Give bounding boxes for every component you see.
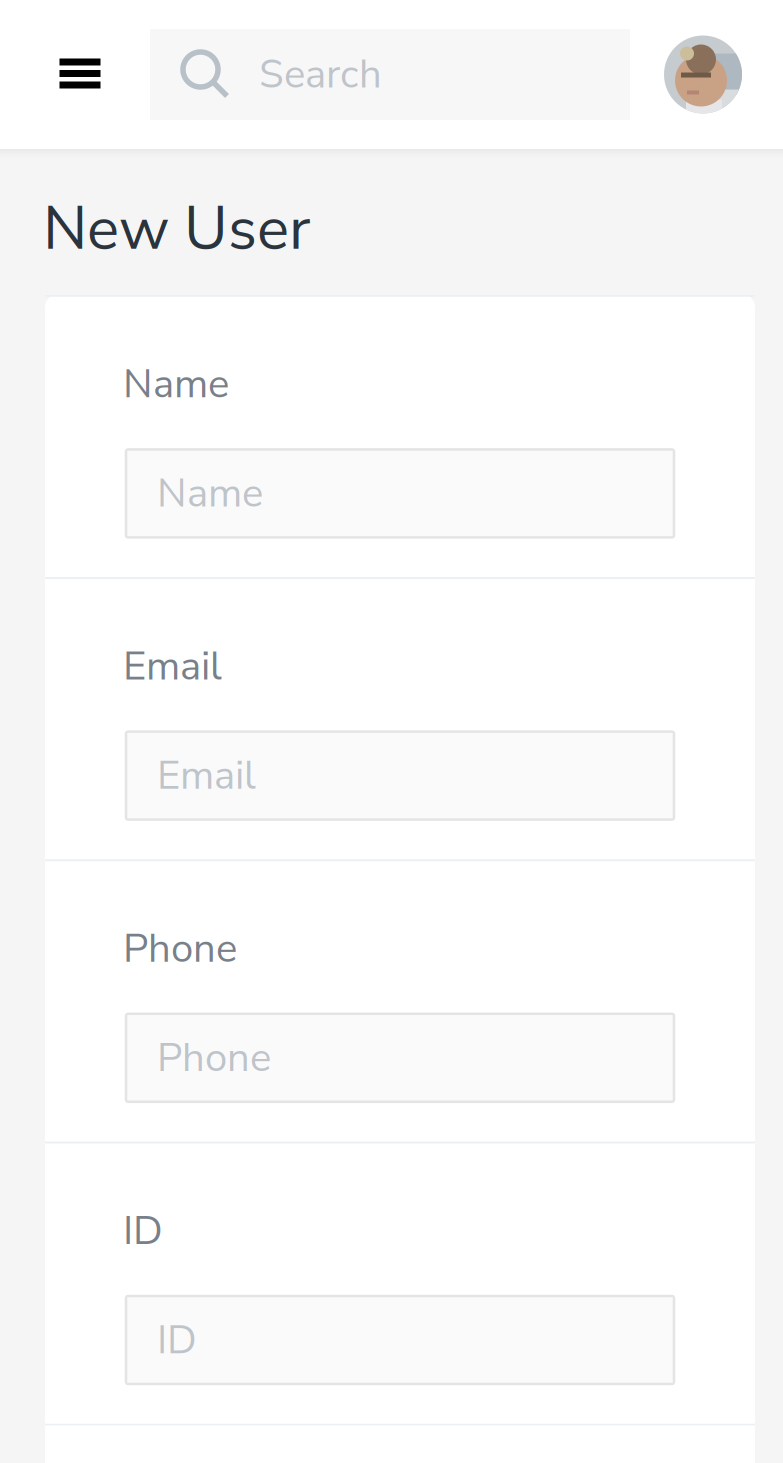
- staticText: Email: [157, 748, 256, 803]
- button[interactable]: Profile photo: [664, 35, 783, 113]
- button[interactable]: Phone: [126, 1014, 674, 1102]
- staticText: New User: [43, 188, 310, 270]
- staticText: Phone: [157, 1030, 271, 1085]
- staticText: Search: [259, 47, 382, 102]
- button[interactable]: Search: [150, 29, 630, 120]
- button[interactable]: Email: [126, 732, 674, 820]
- button[interactable]: Name: [126, 449, 674, 537]
- staticText: Name: [123, 357, 229, 411]
- staticText: Phone: [123, 921, 237, 976]
- staticText: Email: [123, 639, 222, 694]
- staticText: ID: [123, 1203, 163, 1258]
- staticText: Name: [157, 466, 263, 521]
- button[interactable]: ID: [126, 1296, 674, 1384]
- button[interactable]: Menu: [0, 0, 150, 149]
- staticText: ID: [157, 1313, 197, 1367]
